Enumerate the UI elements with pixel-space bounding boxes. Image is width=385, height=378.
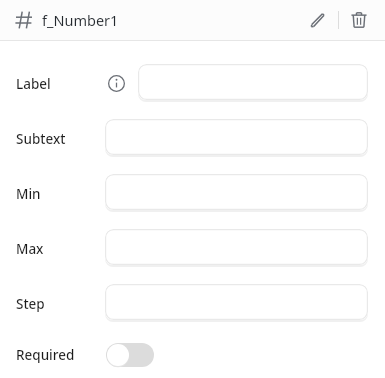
staticText: Max [16, 240, 44, 258]
staticText: Step [16, 295, 45, 313]
button[interactable] [105, 229, 368, 265]
button[interactable] [105, 284, 368, 320]
staticText: Subtext [16, 130, 66, 148]
button[interactable] [138, 64, 368, 100]
button[interactable]: Required toggle, off [106, 342, 154, 368]
staticText: Min [16, 185, 41, 203]
button[interactable]: Edit [304, 6, 332, 34]
staticText: f_Number1 [42, 10, 119, 30]
staticText: Label [16, 75, 51, 93]
button[interactable]: Info about Label [107, 74, 126, 93]
button[interactable] [105, 119, 368, 155]
button[interactable] [105, 174, 368, 210]
staticText: Required [16, 346, 75, 364]
button[interactable]: Delete [345, 6, 373, 34]
